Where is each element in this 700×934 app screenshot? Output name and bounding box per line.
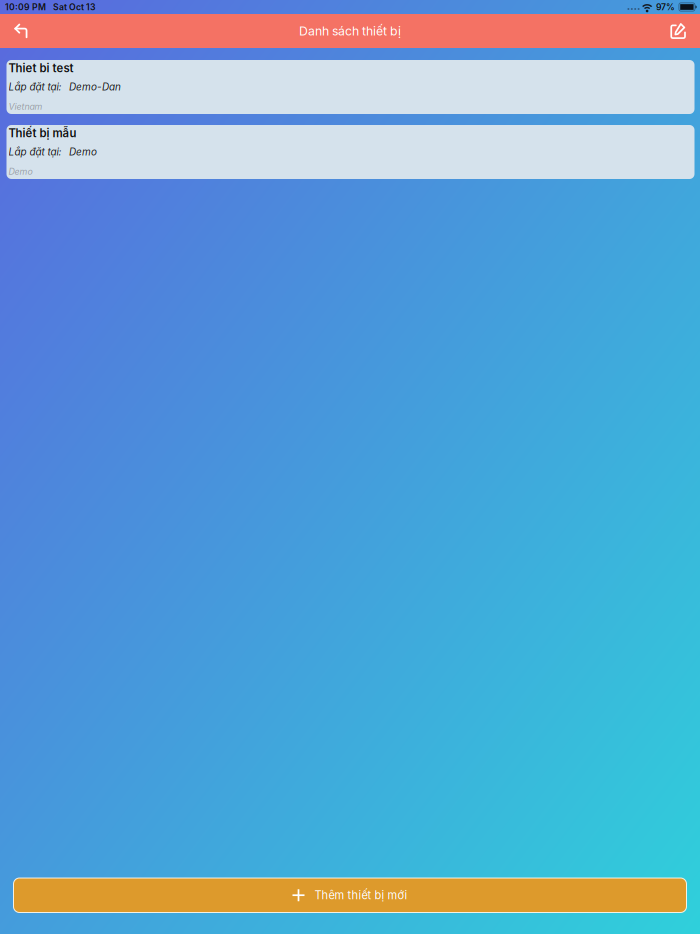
button[interactable]: Thiet bi test	[6, 60, 694, 114]
staticText: Demo-Dan	[69, 81, 121, 93]
staticText: 10:09 PM	[5, 2, 46, 12]
staticText: Thiết bị mẫu	[8, 126, 76, 140]
staticText: Thêm thiết bị mới	[314, 889, 407, 902]
button[interactable]: Thiết bị mẫu	[6, 125, 694, 179]
button[interactable]: Back	[3, 14, 41, 48]
staticText: Lắp đặt tại:	[8, 146, 61, 158]
staticText: Danh sách thiết bị	[299, 24, 401, 38]
staticText: Demo	[69, 146, 97, 158]
staticText: Lắp đặt tại:	[8, 81, 61, 93]
button[interactable]: Compose	[659, 14, 697, 48]
staticText: Sat Oct 13	[53, 2, 96, 12]
staticText: Thiet bi test	[8, 61, 73, 75]
staticText: Vietnam	[8, 101, 42, 112]
staticText: 97%	[656, 2, 675, 12]
staticText: Demo	[8, 166, 32, 177]
button[interactable]: Thêm thiết bị mới	[13, 878, 686, 912]
